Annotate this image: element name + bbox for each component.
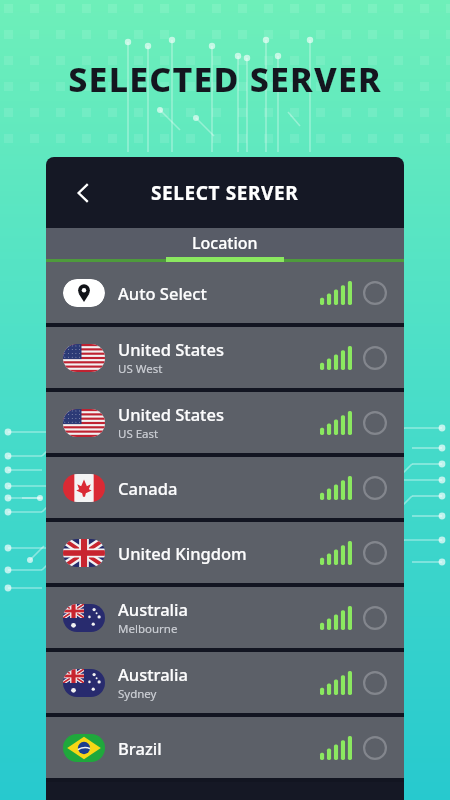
staticText: Canada (118, 477, 178, 499)
staticText: Melbourne (118, 621, 178, 637)
staticText: Auto Select (118, 282, 207, 304)
button[interactable]: Select Australia (360, 603, 390, 633)
staticText: United States (118, 338, 224, 360)
button[interactable]: Select United Kingdom (360, 538, 390, 568)
staticText: Sydney (118, 686, 157, 702)
button[interactable]: Select Canada (360, 473, 390, 503)
staticText: United Kingdom (118, 542, 247, 564)
button[interactable]: Canada (46, 457, 404, 518)
staticText: Australia (118, 598, 188, 620)
staticText: Location (192, 232, 258, 254)
button[interactable]: Select Auto Select (360, 278, 390, 308)
staticText: US East (118, 426, 159, 442)
button[interactable]: Select Brazil (360, 733, 390, 763)
button[interactable]: Brazil (46, 717, 404, 778)
button[interactable]: Back (60, 170, 106, 216)
button[interactable]: Location (46, 228, 404, 262)
staticText: US West (118, 361, 163, 377)
button[interactable]: Select United States (360, 343, 390, 373)
button[interactable]: Australia (46, 587, 404, 648)
button[interactable]: United States (46, 392, 404, 453)
button[interactable]: Auto Select (46, 262, 404, 323)
button[interactable]: Australia (46, 652, 404, 713)
button[interactable]: Select United States (360, 408, 390, 438)
button[interactable]: United States (46, 327, 404, 388)
staticText: Brazil (118, 737, 162, 759)
button[interactable]: Select Australia (360, 668, 390, 698)
button[interactable]: United Kingdom (46, 522, 404, 583)
staticText: SELECTED SERVER (68, 56, 382, 102)
staticText: Australia (118, 663, 188, 685)
staticText: SELECT SERVER (151, 180, 299, 206)
staticText: United States (118, 403, 224, 425)
